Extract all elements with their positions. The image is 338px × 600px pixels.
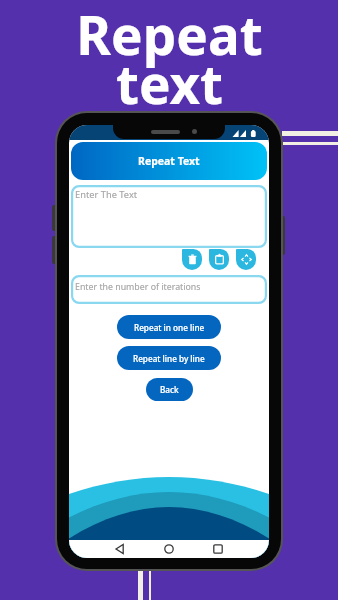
button[interactable]: Repeat line by line <box>117 346 221 370</box>
staticText: Back <box>160 384 179 395</box>
button[interactable]: Repeat Text <box>71 142 267 180</box>
button[interactable]: Enter The Text <box>71 185 267 248</box>
staticText: Enter the number of iterations <box>75 281 201 293</box>
button[interactable]: Paste <box>209 249 229 270</box>
staticText: Enter The Text <box>75 188 138 201</box>
button[interactable]: Repeat in one line <box>117 315 221 339</box>
staticText: Repeat in one line <box>134 322 205 333</box>
staticText: Repeat text <box>76 0 263 120</box>
button[interactable]: Delete <box>182 249 202 270</box>
staticText: Repeat line by line <box>133 353 205 364</box>
button[interactable]: Select all <box>236 249 256 270</box>
button[interactable]: Back <box>146 378 193 401</box>
staticText: Repeat Text <box>138 154 200 168</box>
button[interactable]: Enter the number of iterations <box>71 275 267 304</box>
